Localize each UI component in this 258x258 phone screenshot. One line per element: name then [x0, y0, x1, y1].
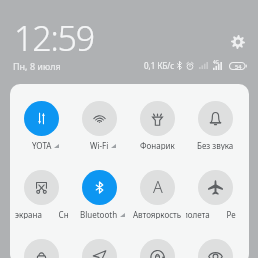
- staticText: A: [153, 176, 163, 198]
- button[interactable]: YOTA: [13, 101, 70, 150]
- button[interactable]: [128, 239, 186, 258]
- staticText: 12:59: [14, 15, 94, 61]
- button[interactable]: Без звука: [186, 101, 244, 150]
- staticText: экрана Сн: [15, 209, 69, 219]
- button[interactable]: A: [128, 170, 186, 219]
- staticText: YOTA: [32, 140, 52, 150]
- staticText: 4G: [213, 59, 219, 65]
- button[interactable]: Фонарик: [128, 101, 186, 150]
- button[interactable]: Bluetooth: [70, 170, 128, 219]
- staticText: Пн, 8 июля: [13, 60, 61, 72]
- button[interactable]: экрана Сн: [13, 170, 70, 219]
- button[interactable]: Wi-Fi: [70, 101, 128, 150]
- button[interactable]: [186, 239, 244, 258]
- staticText: Фонарик: [140, 140, 175, 150]
- staticText: 54: [235, 63, 242, 70]
- staticText: полета Ре: [186, 209, 236, 219]
- button[interactable]: Settings: [227, 31, 248, 52]
- staticText: Bluetooth: [80, 209, 118, 219]
- staticText: Wi-Fi: [90, 140, 109, 150]
- staticText: Без звука: [197, 140, 234, 150]
- button[interactable]: [13, 239, 70, 258]
- button[interactable]: полета Ре: [186, 170, 244, 219]
- staticText: 0,1 КБ/c: [144, 60, 175, 71]
- button[interactable]: [70, 239, 128, 258]
- staticText: Автояркость: [133, 209, 182, 219]
